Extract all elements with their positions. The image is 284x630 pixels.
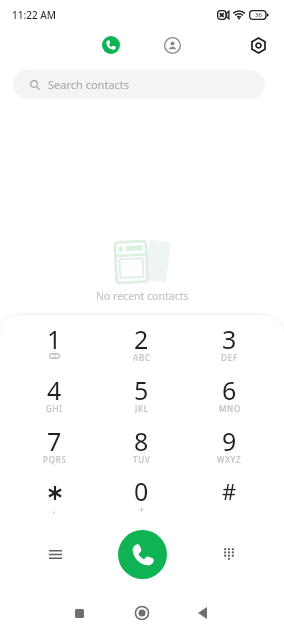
staticText: PQRS	[43, 454, 67, 465]
button[interactable]: More options	[38, 537, 72, 571]
staticText: GHI	[46, 403, 63, 414]
staticText: Search contacts	[48, 77, 130, 92]
button[interactable]: 7	[11, 420, 98, 469]
staticText: 4	[47, 373, 62, 407]
button[interactable]: 3	[186, 318, 273, 367]
button[interactable]: Dialpad	[212, 537, 246, 571]
button[interactable]: 5	[98, 369, 185, 418]
button[interactable]: Home	[127, 598, 157, 628]
button[interactable]: Recent apps	[64, 598, 94, 628]
staticText: 3	[222, 322, 237, 356]
button[interactable]: Contacts tab	[163, 36, 181, 54]
staticText: 0	[134, 474, 149, 508]
staticText: JKL	[135, 403, 149, 414]
staticText: 36	[255, 11, 262, 19]
button[interactable]: 2	[98, 318, 185, 367]
staticText: 11:22 AM	[12, 8, 56, 22]
button[interactable]: Settings	[249, 36, 267, 54]
staticText: 7	[47, 424, 62, 458]
staticText: DEF	[221, 352, 238, 363]
button[interactable]: 6	[186, 369, 273, 418]
staticText: +	[139, 504, 145, 515]
staticText: 8	[134, 424, 149, 458]
button[interactable]: 0	[98, 470, 185, 519]
staticText: TUV	[133, 454, 151, 465]
staticText: WXYZ	[217, 454, 242, 465]
button[interactable]: 8	[98, 420, 185, 469]
button[interactable]: Search contacts	[13, 70, 265, 99]
staticText: 9	[222, 424, 237, 458]
staticText: 2	[134, 322, 149, 356]
staticText: MNO	[219, 403, 241, 414]
button[interactable]: Back	[187, 598, 217, 628]
staticText: ,	[53, 504, 56, 515]
staticText: No recent contacts	[96, 289, 189, 303]
staticText: 1	[47, 322, 62, 356]
staticText: ABC	[133, 352, 151, 363]
staticText: 5	[134, 373, 149, 407]
button[interactable]: 1	[11, 318, 98, 367]
button[interactable]: Recents tab	[102, 36, 120, 54]
button[interactable]: 9	[186, 420, 273, 469]
button[interactable]: #	[186, 470, 273, 519]
staticText: 6	[222, 373, 237, 407]
button[interactable]: ,	[11, 470, 98, 519]
button[interactable]: 4	[11, 369, 98, 418]
button[interactable]: Call	[118, 530, 167, 579]
staticText: #	[222, 476, 237, 506]
